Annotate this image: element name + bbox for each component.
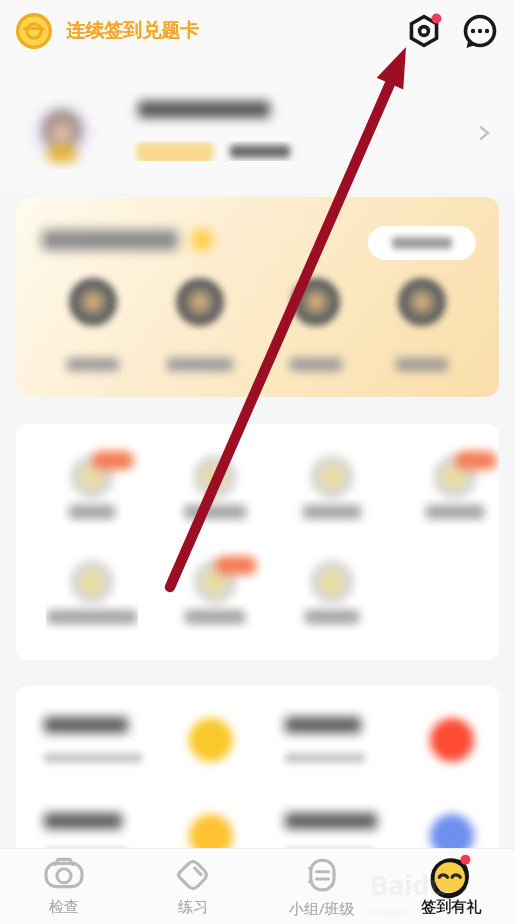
button[interactable]: [0, 97, 515, 169]
button[interactable]: [286, 546, 378, 646]
button[interactable]: [155, 265, 245, 372]
staticText: 连续签到兑题卡: [66, 19, 199, 43]
staticText: 签到有礼: [421, 898, 481, 917]
button[interactable]: 练习: [128, 855, 257, 917]
button[interactable]: 签到有礼: [386, 855, 515, 917]
button[interactable]: [16, 788, 257, 866]
button[interactable]: Messages: [461, 12, 499, 50]
button[interactable]: [16, 197, 499, 397]
button[interactable]: [409, 441, 499, 541]
button[interactable]: [286, 441, 378, 541]
button[interactable]: [271, 265, 361, 372]
button[interactable]: [169, 441, 261, 541]
button[interactable]: Scan: [405, 12, 443, 50]
button[interactable]: 小组/班级: [257, 855, 386, 918]
button[interactable]: [46, 546, 138, 646]
button[interactable]: [46, 441, 138, 541]
staticText: 练习: [178, 898, 208, 917]
staticText: 检查: [49, 898, 79, 917]
button[interactable]: [377, 265, 467, 372]
button[interactable]: [257, 788, 498, 866]
button[interactable]: [16, 692, 257, 788]
button[interactable]: [257, 692, 498, 788]
button[interactable]: [368, 226, 476, 260]
staticText: Baidu: [370, 866, 447, 903]
staticText: 小组/班级: [289, 898, 355, 918]
button[interactable]: [48, 265, 138, 372]
button[interactable]: [169, 546, 261, 646]
button[interactable]: 检查: [0, 855, 128, 917]
